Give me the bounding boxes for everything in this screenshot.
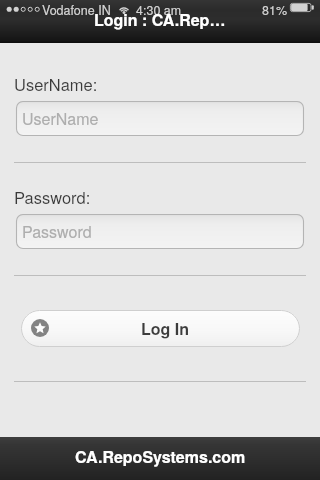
button[interactable]: Password	[16, 214, 304, 249]
staticText: 4:30 am	[136, 1, 182, 19]
button[interactable]: UserName	[16, 101, 304, 136]
staticText: CA.RepoSystems.com	[75, 445, 246, 468]
button[interactable]: Log In	[21, 310, 300, 347]
staticText: 81%	[262, 1, 288, 19]
staticText: UserName	[22, 107, 99, 130]
staticText: Password	[22, 220, 92, 243]
staticText: Vodafone IN	[42, 1, 111, 19]
other: Favourite	[31, 319, 49, 337]
staticText: Log In	[141, 317, 190, 340]
staticText: Login : CA.Rep…	[94, 8, 226, 31]
button[interactable]: CA.RepoSystems.com	[0, 437, 320, 480]
staticText: UserName:	[14, 72, 98, 96]
staticText: Password:	[14, 185, 91, 209]
